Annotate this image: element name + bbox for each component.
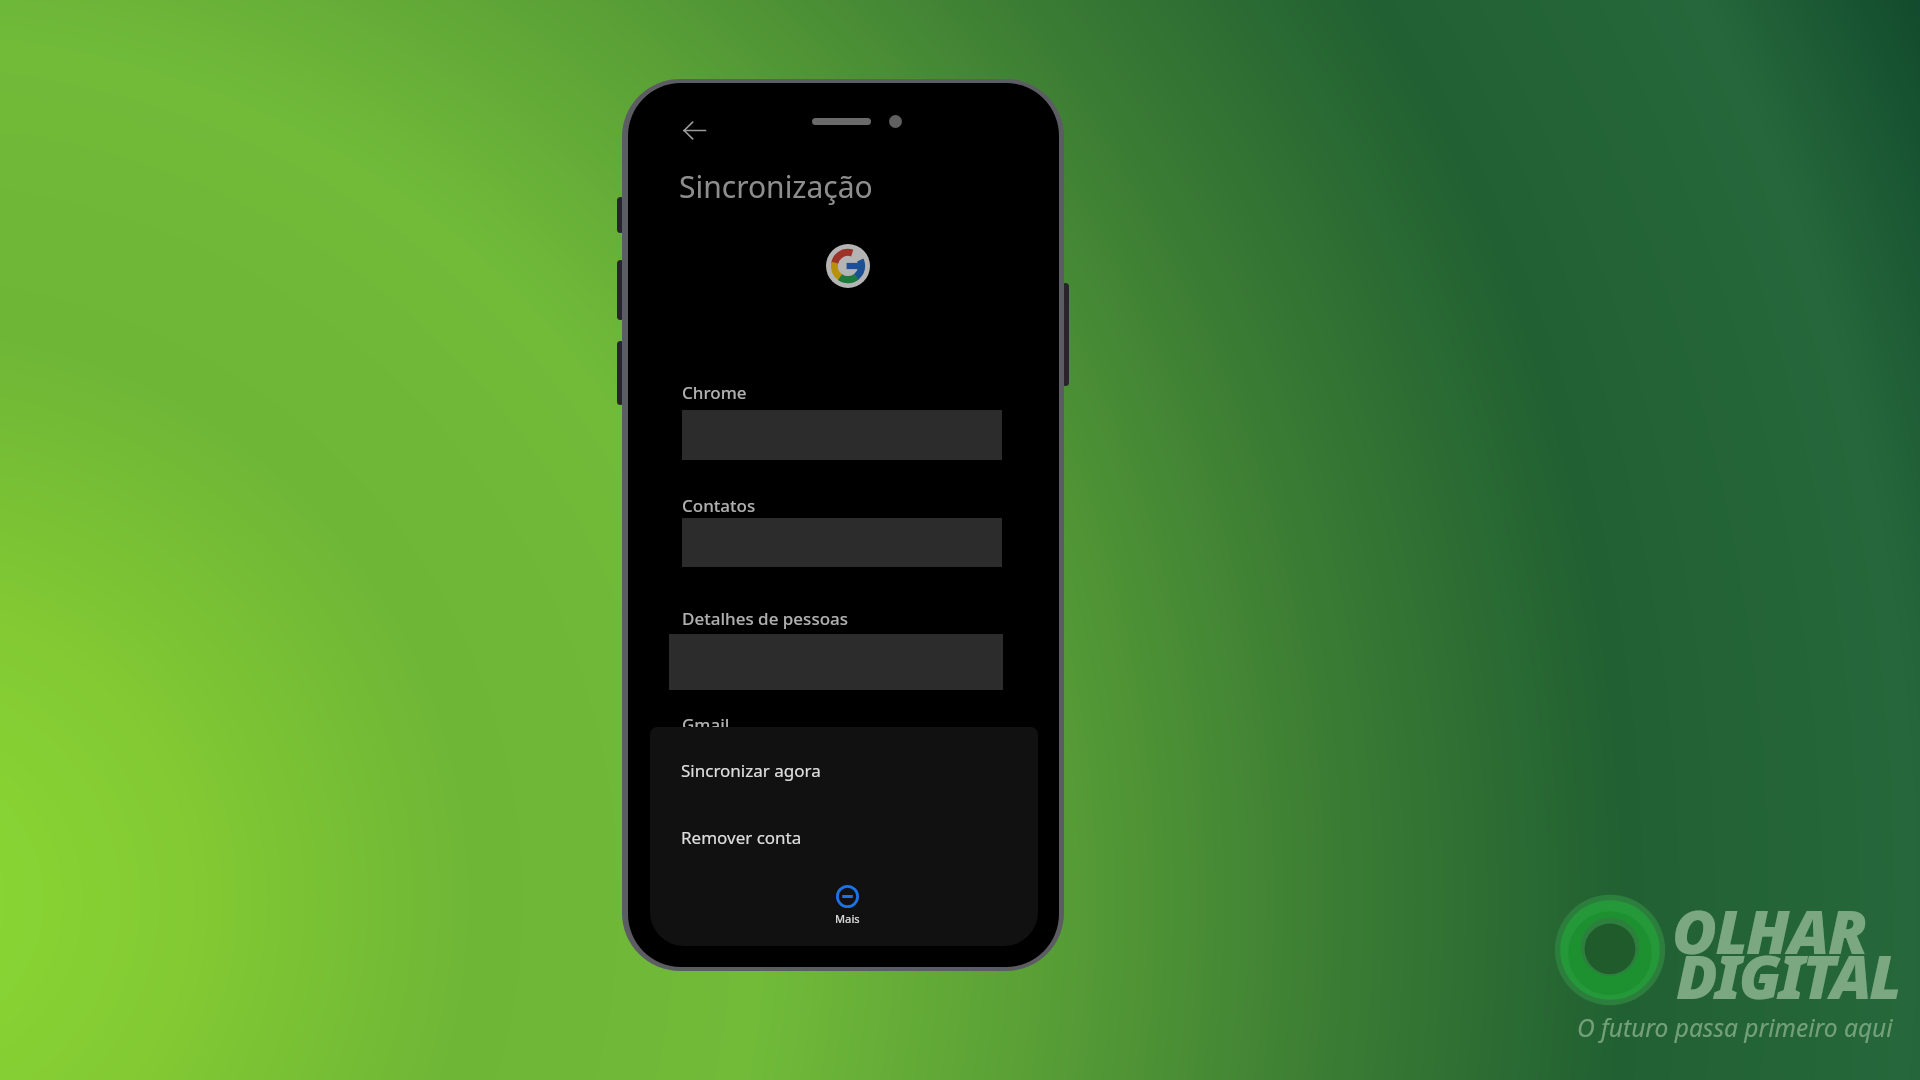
- staticText: DIGITAL: [1676, 934, 1899, 1017]
- button[interactable]: Sincronizar agora: [650, 748, 1038, 792]
- staticText: Gmail: [682, 713, 730, 736]
- staticText: Mais: [835, 911, 860, 926]
- button[interactable]: Mais: [822, 885, 872, 933]
- button[interactable]: Chrome: [650, 371, 1038, 470]
- staticText: Remover conta: [681, 826, 802, 849]
- staticText: Sincronização: [679, 166, 873, 207]
- staticText: O futuro passa primeiro aqui: [1577, 1011, 1893, 1044]
- staticText: Contatos: [682, 494, 756, 517]
- staticText: OLHAR: [1672, 889, 1867, 972]
- staticText: Sincronizar agora: [681, 759, 821, 782]
- button[interactable]: Voltar: [676, 112, 712, 148]
- staticText: Chrome: [682, 381, 747, 404]
- button[interactable]: Contatos: [650, 484, 1038, 577]
- button[interactable]: Remover conta: [650, 815, 1038, 859]
- button[interactable]: Detalhes de pessoas: [650, 597, 1038, 700]
- staticText: Detalhes de pessoas: [682, 607, 849, 630]
